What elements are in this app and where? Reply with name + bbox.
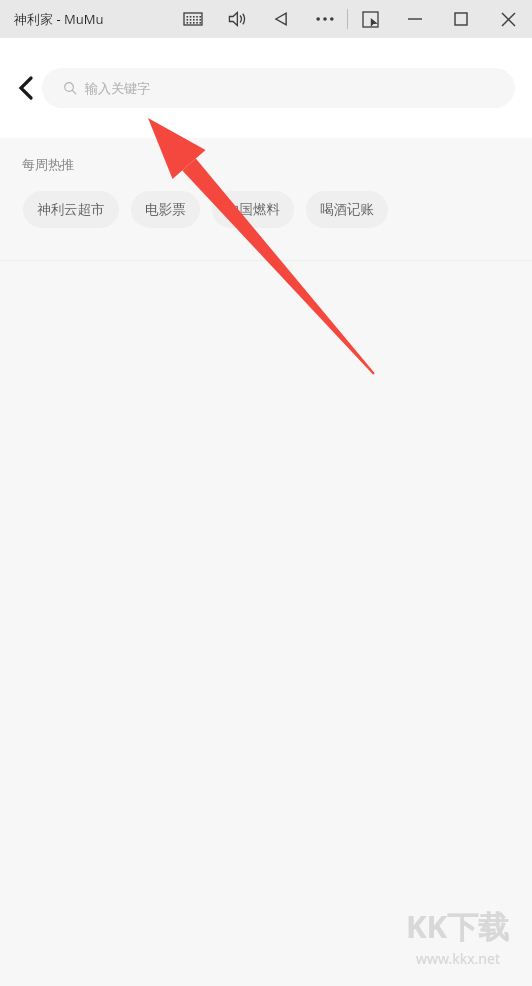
staticText: www.kkx.net (416, 949, 500, 968)
button[interactable]: 电影票 (131, 191, 200, 228)
button[interactable]: 中国燃料 (212, 191, 294, 228)
staticText: 中国燃料 (226, 201, 280, 218)
button[interactable]: 喝酒记账 (306, 191, 388, 228)
button[interactable]: Keyboard (171, 0, 215, 38)
staticText: KK下载 (406, 905, 510, 947)
button[interactable]: 输入关键字 (42, 68, 515, 108)
button[interactable]: Maximize (438, 0, 484, 38)
staticText: 喝酒记账 (320, 201, 374, 218)
button[interactable]: Close (484, 0, 532, 38)
button[interactable]: Back (6, 68, 46, 108)
staticText: 电影票 (145, 201, 186, 218)
staticText: 神利家 - MuMu (14, 10, 104, 28)
button[interactable]: Back (259, 0, 303, 38)
button[interactable]: Volume (215, 0, 259, 38)
staticText: 输入关键字 (85, 80, 150, 96)
button[interactable]: 神利云超市 (23, 191, 119, 228)
staticText: 神利云超市 (37, 201, 105, 218)
button[interactable]: Screenshot (348, 0, 392, 38)
staticText: 每周热推 (22, 156, 74, 172)
button[interactable]: Minimize (392, 0, 438, 38)
button[interactable]: More (303, 0, 347, 38)
